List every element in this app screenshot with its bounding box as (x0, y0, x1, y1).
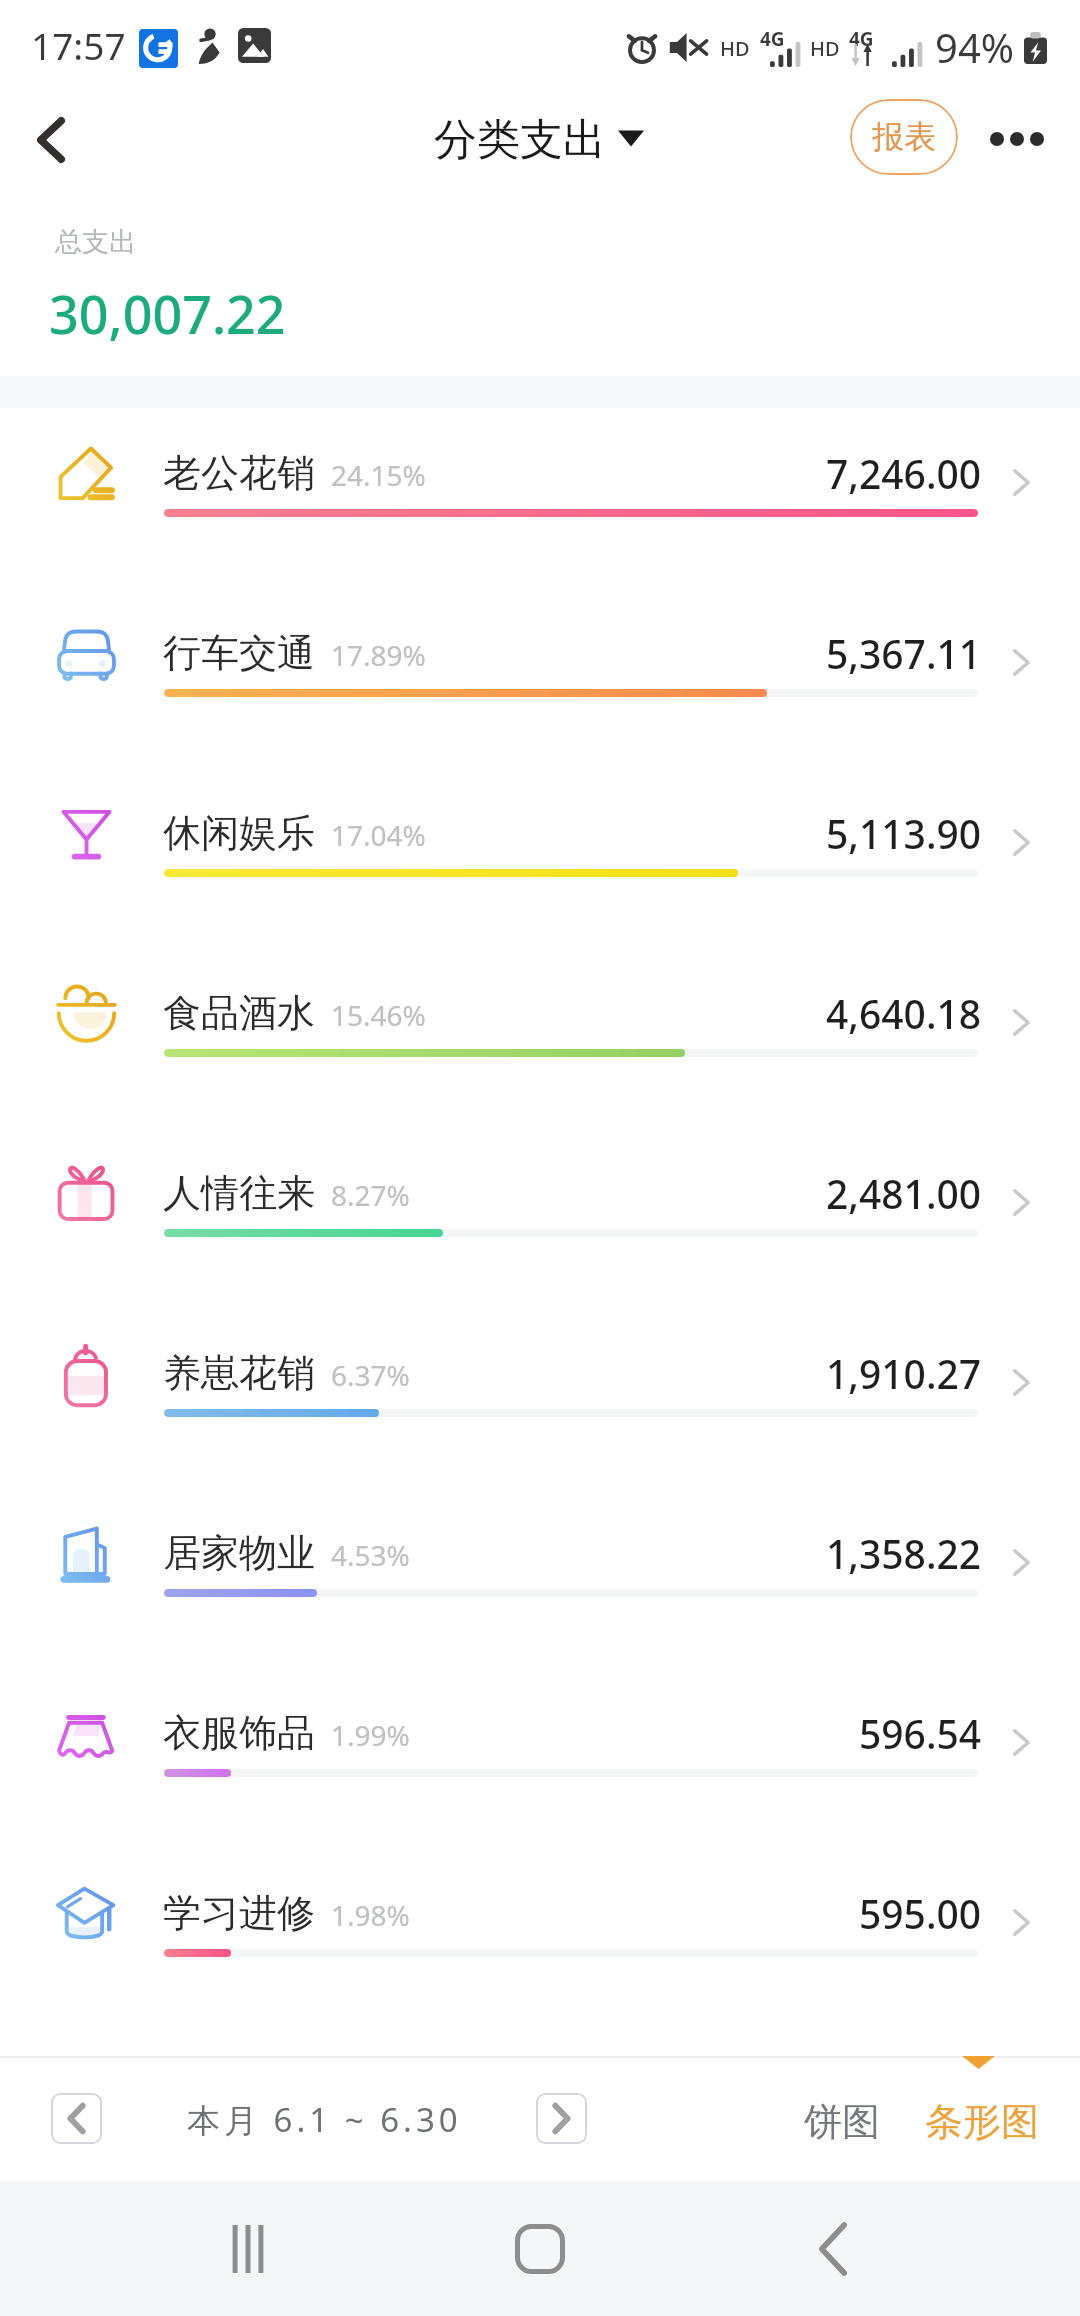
staticText: HD (720, 35, 750, 62)
button[interactable]: 衣服饰品 (0, 1668, 1080, 1848)
button[interactable]: 学习进修 (0, 1848, 1080, 2028)
button[interactable]: 居家物业 (0, 1488, 1080, 1668)
staticText: 5,113.90 (826, 807, 982, 860)
button[interactable]: 分类支出 (426, 105, 652, 175)
button[interactable]: 人情往来 (0, 1128, 1080, 1308)
button[interactable]: 主屏幕 (495, 2204, 585, 2294)
staticText: 7,246.00 (826, 447, 982, 500)
button[interactable]: 行车交通 (0, 588, 1080, 768)
staticText: 30,007.22 (49, 278, 286, 349)
button[interactable]: 上一个月 (51, 2093, 102, 2144)
staticText: 食品酒水 (163, 989, 315, 1037)
staticText: 8.27% (331, 1176, 410, 1214)
staticText: 17.89% (331, 636, 426, 674)
staticText: 本月 6.1 ~ 6.30 (187, 2097, 462, 2142)
button[interactable]: 下一个月 (536, 2093, 587, 2144)
button[interactable]: 饼图 (784, 2080, 900, 2164)
staticText: 1.99% (331, 1716, 410, 1754)
staticText: 596.54 (859, 1707, 982, 1760)
staticText: 衣服饰品 (163, 1709, 315, 1757)
button[interactable]: 最近任务 (203, 2204, 293, 2294)
staticText: 总支出 (55, 225, 136, 259)
staticText: 休闲娱乐 (163, 809, 315, 857)
staticText: 24.15% (331, 456, 426, 494)
staticText: 1,910.27 (826, 1347, 982, 1400)
button[interactable]: 报表 (850, 99, 958, 175)
staticText: 5,367.11 (826, 627, 982, 680)
staticText: 老公花销 (163, 449, 315, 497)
staticText: 条形图 (925, 2098, 1039, 2146)
staticText: 2,481.00 (826, 1167, 982, 1220)
staticText: 17:57 (31, 20, 126, 70)
button[interactable]: 更多选项 (983, 105, 1051, 173)
staticText: 595.00 (859, 1887, 982, 1940)
staticText: 17.04% (331, 816, 426, 854)
staticText: 1.98% (331, 1896, 410, 1934)
staticText: 饼图 (804, 2098, 880, 2146)
button[interactable]: 条形图 (905, 2080, 1059, 2164)
staticText: 4,640.18 (826, 987, 982, 1040)
button[interactable]: 老公花销 (0, 408, 1080, 588)
staticText: 分类支出 (434, 113, 606, 167)
staticText: 4.53% (331, 1536, 410, 1574)
staticText: 人情往来 (163, 1169, 315, 1217)
staticText: HD (810, 35, 840, 62)
button[interactable]: 休闲娱乐 (0, 768, 1080, 948)
staticText: 4G (849, 26, 874, 52)
staticText: 报表 (872, 117, 936, 157)
staticText: 1,358.22 (826, 1527, 982, 1580)
staticText: 行车交通 (163, 629, 315, 677)
staticText: 学习进修 (163, 1889, 315, 1937)
staticText: 居家物业 (163, 1529, 315, 1577)
staticText: 4G (760, 26, 785, 52)
button[interactable]: 返回 (788, 2204, 878, 2294)
button[interactable]: 食品酒水 (0, 948, 1080, 1128)
staticText: 养崽花销 (163, 1349, 315, 1397)
button[interactable]: 返回 (0, 92, 101, 188)
staticText: 15.46% (331, 996, 426, 1034)
staticText: 94% (935, 20, 1014, 74)
button[interactable]: 养崽花销 (0, 1308, 1080, 1488)
staticText: 6.37% (331, 1356, 410, 1394)
